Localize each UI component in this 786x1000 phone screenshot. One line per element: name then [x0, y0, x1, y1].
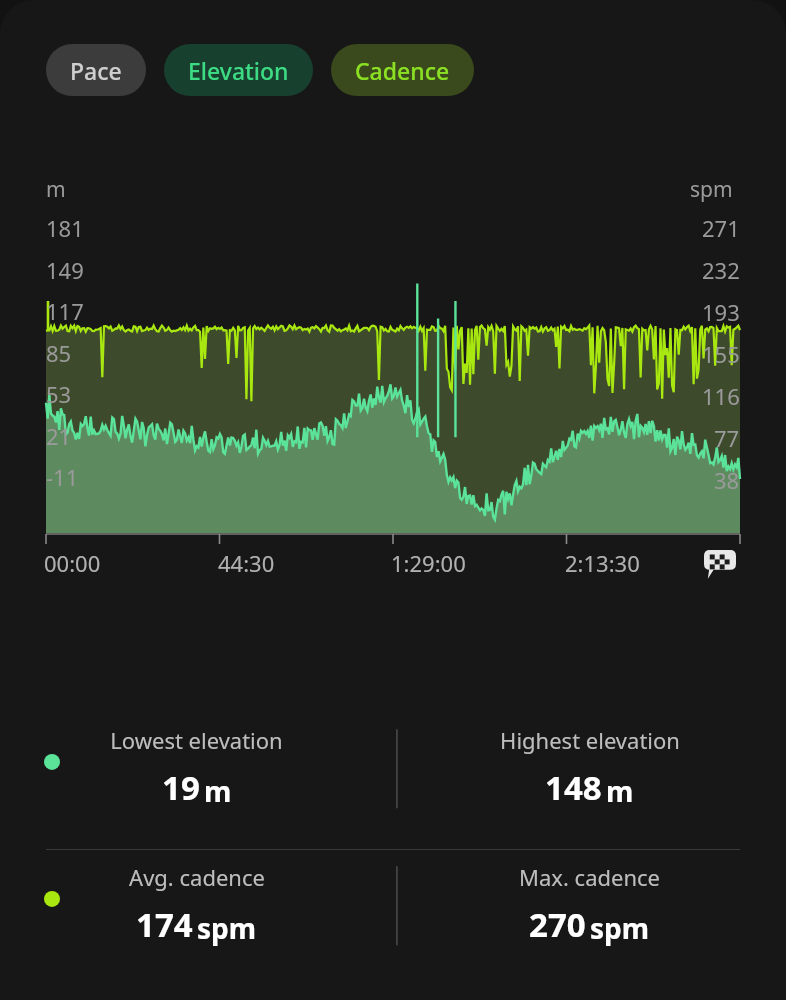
- staticText: 77: [714, 423, 740, 453]
- staticText: spm: [690, 175, 733, 204]
- staticText: 193: [702, 297, 740, 327]
- button[interactable]: Lowest elevation: [0, 713, 786, 849]
- button[interactable]: Cadence: [331, 44, 474, 96]
- staticText: spm: [197, 909, 257, 947]
- staticText: 149: [46, 255, 84, 285]
- staticText: 271: [702, 213, 740, 243]
- staticText: 38: [714, 465, 740, 495]
- staticText: spm: [590, 909, 650, 947]
- staticText: m: [606, 772, 634, 810]
- staticText: 117: [46, 296, 84, 326]
- staticText: 181: [46, 213, 84, 243]
- staticText: 85: [46, 338, 72, 368]
- button[interactable]: Pace: [46, 44, 146, 96]
- staticText: 00:00: [44, 548, 101, 578]
- staticText: 270: [529, 902, 586, 947]
- staticText: 116: [702, 381, 740, 411]
- staticText: 1:29:00: [391, 548, 466, 578]
- staticText: Lowest elevation: [110, 725, 283, 755]
- button[interactable]: Elevation: [164, 44, 313, 96]
- staticText: m: [204, 772, 232, 810]
- staticText: 19: [162, 765, 200, 810]
- button[interactable]: Finish: [704, 550, 736, 582]
- staticText: Avg. cadence: [129, 862, 265, 892]
- staticText: Highest elevation: [500, 725, 680, 755]
- staticText: Elevation: [188, 55, 289, 86]
- staticText: 148: [545, 765, 602, 810]
- staticText: Max. cadence: [519, 862, 660, 892]
- staticText: Cadence: [355, 55, 450, 86]
- staticText: 174: [136, 902, 193, 947]
- staticText: 155: [702, 339, 740, 369]
- staticText: 2:13:30: [565, 548, 640, 578]
- staticText: 53: [46, 379, 72, 409]
- staticText: 232: [702, 255, 740, 285]
- staticText: m: [46, 175, 66, 204]
- staticText: 21: [46, 421, 72, 451]
- staticText: 44:30: [218, 548, 275, 578]
- button[interactable]: Avg. cadence: [0, 850, 786, 986]
- staticText: Pace: [70, 55, 122, 86]
- staticText: -11: [46, 462, 79, 492]
